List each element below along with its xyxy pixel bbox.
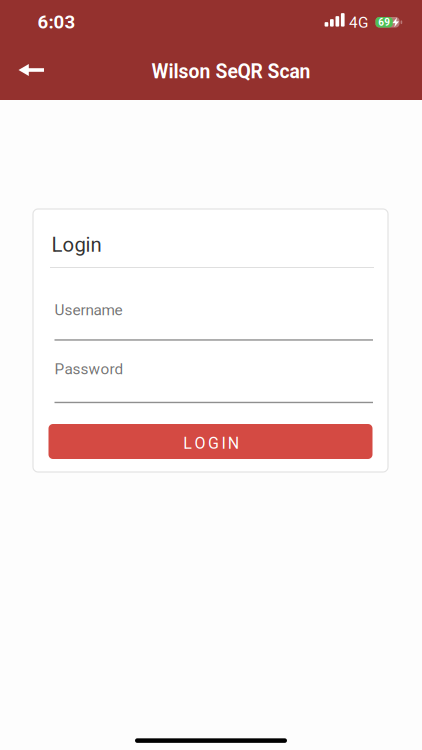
button[interactable]: Back	[9, 48, 53, 92]
staticText: I	[221, 434, 225, 453]
staticText: L	[183, 434, 192, 453]
staticText: O	[195, 434, 206, 453]
staticText: Username	[54, 301, 122, 319]
staticText: Wilson SeQR Scan	[151, 60, 310, 83]
staticText: N	[228, 434, 239, 453]
staticText: 69	[378, 16, 390, 28]
staticText: 4G	[349, 14, 368, 32]
staticText: 6:03	[37, 11, 75, 33]
staticText: Login	[51, 233, 101, 257]
staticText: G	[208, 434, 219, 453]
button[interactable]: LOGIN	[48, 424, 372, 459]
button[interactable]: Password	[54, 360, 373, 403]
staticText: Password	[54, 360, 123, 378]
button[interactable]: Username	[54, 301, 373, 341]
